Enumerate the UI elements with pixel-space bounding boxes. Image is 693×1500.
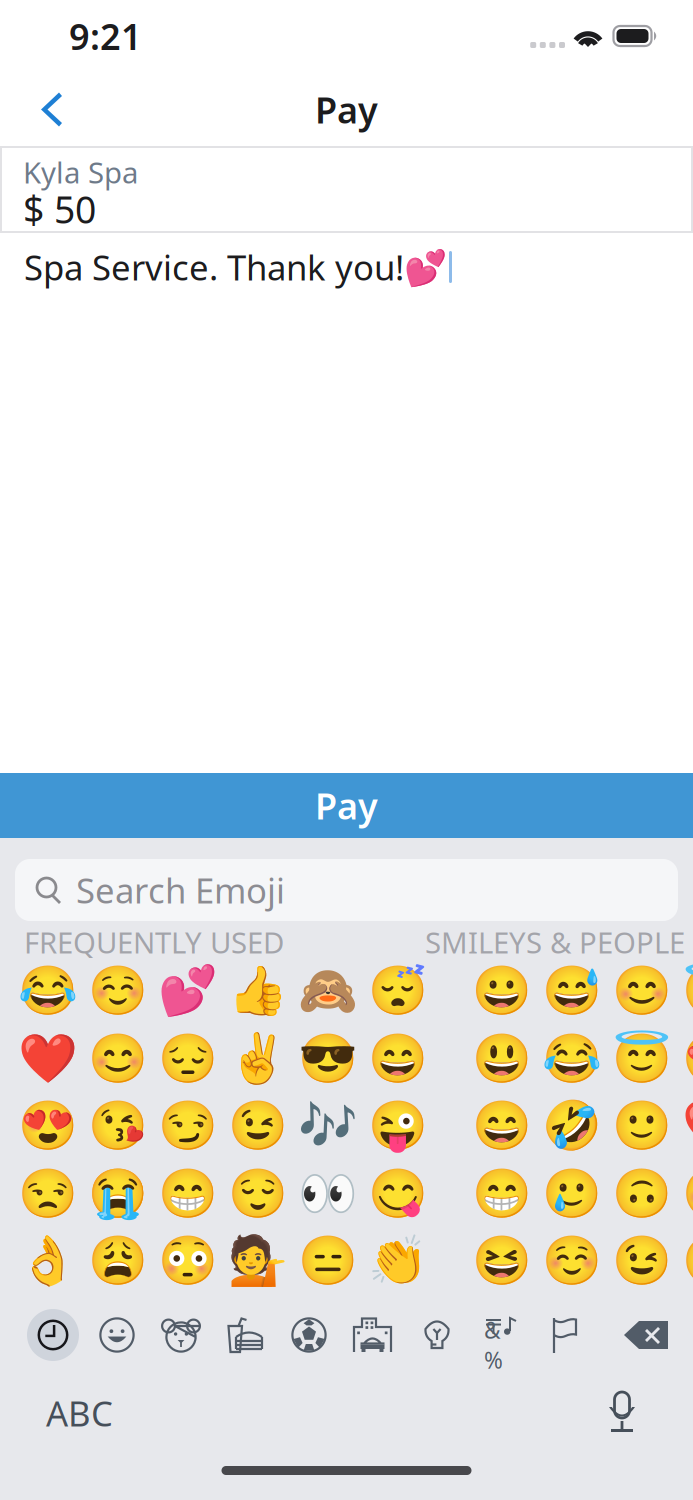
button[interactable]: 😉	[223, 1092, 293, 1159]
button[interactable]: 😉	[607, 1227, 677, 1294]
staticText: 😄	[472, 1099, 532, 1153]
button[interactable]: Search Emoji	[15, 859, 678, 921]
button[interactable]: Dictate	[587, 1391, 657, 1435]
button[interactable]: 😄	[467, 1092, 537, 1159]
button[interactable]: 👏	[363, 1227, 433, 1294]
button[interactable]: 😋	[363, 1160, 433, 1227]
staticText: 🙈	[298, 964, 358, 1018]
button[interactable]: 😊	[677, 1160, 693, 1227]
staticText: Pay	[315, 782, 378, 829]
staticText: 💁	[228, 1234, 288, 1288]
button[interactable]: 🥲	[537, 1160, 607, 1227]
staticText: 👌	[18, 1234, 78, 1288]
button[interactable]: Flags	[533, 1303, 597, 1367]
staticText: ✌️	[228, 1031, 288, 1086]
button[interactable]: 😁	[153, 1160, 223, 1227]
staticText: 🎶	[298, 1099, 358, 1153]
button[interactable]: 😂	[537, 1025, 607, 1092]
button[interactable]: 😘	[677, 1227, 693, 1294]
button[interactable]: Objects	[405, 1303, 469, 1367]
button[interactable]: Recently used	[21, 1303, 85, 1367]
staticText: Search Emoji	[76, 867, 285, 913]
button[interactable]: 😊	[83, 1025, 153, 1092]
staticText: 😊	[612, 964, 672, 1018]
button[interactable]: 👍	[223, 957, 293, 1024]
button[interactable]: ❤️	[677, 1092, 693, 1159]
button[interactable]: ☺️	[537, 1227, 607, 1294]
button[interactable]: 👀	[293, 1160, 363, 1227]
button[interactable]: Symbols	[469, 1303, 533, 1367]
staticText: 😒	[18, 1166, 78, 1221]
button[interactable]: Travel and places	[341, 1303, 405, 1367]
button[interactable]: 😍	[677, 1025, 693, 1092]
staticText: 😜	[368, 1099, 428, 1153]
button[interactable]: 😆	[467, 1227, 537, 1294]
button[interactable]: 💁	[223, 1227, 293, 1294]
button[interactable]: 🤣	[537, 1092, 607, 1159]
button[interactable]: ✌️	[223, 1025, 293, 1092]
staticText: 😁	[158, 1166, 218, 1221]
staticText: 😂	[18, 964, 78, 1018]
staticText: 😘	[682, 1234, 693, 1288]
staticText: 👏	[368, 1234, 428, 1288]
staticText: 🙂	[612, 1099, 672, 1153]
button[interactable]: 😭	[83, 1160, 153, 1227]
button[interactable]: ☺️	[83, 957, 153, 1024]
button[interactable]: 😅	[537, 957, 607, 1024]
button[interactable]: Activity	[277, 1303, 341, 1367]
button[interactable]: 😔	[153, 1025, 223, 1092]
button[interactable]: Animals and nature	[149, 1303, 213, 1367]
staticText: 😴	[368, 964, 428, 1018]
button[interactable]: 🙈	[293, 957, 363, 1024]
button[interactable]: 😂	[13, 957, 83, 1024]
staticText: 😁	[472, 1166, 532, 1221]
staticText: 👍	[228, 964, 288, 1018]
button[interactable]: 😊	[607, 957, 677, 1024]
button[interactable]: 😑	[293, 1227, 363, 1294]
button[interactable]: 😁	[467, 1160, 537, 1227]
button[interactable]: 😜	[363, 1092, 433, 1159]
staticText: 😇	[612, 1031, 672, 1086]
button[interactable]: 🙂	[607, 1092, 677, 1159]
staticText: 😉	[228, 1099, 288, 1153]
button[interactable]: 😀	[467, 957, 537, 1024]
button[interactable]: ABC	[30, 1376, 129, 1450]
button[interactable]: 🙃	[607, 1160, 677, 1227]
staticText: 😍	[682, 1031, 693, 1086]
staticText: 😂	[542, 1031, 602, 1086]
staticText: 🤣	[542, 1099, 602, 1153]
button[interactable]: 😇	[677, 957, 693, 1024]
button[interactable]: 😴	[363, 957, 433, 1024]
staticText: 😀	[472, 964, 532, 1018]
button[interactable]: 😩	[83, 1227, 153, 1294]
button[interactable]: Back	[0, 77, 84, 141]
button[interactable]: 😄	[363, 1025, 433, 1092]
staticText: ☺️	[88, 964, 148, 1018]
staticText: 😏	[158, 1099, 218, 1153]
staticText: 😳	[158, 1234, 218, 1288]
button[interactable]: 😍	[13, 1092, 83, 1159]
button[interactable]: 😇	[607, 1025, 677, 1092]
staticText: 😆	[472, 1234, 532, 1288]
staticText: SMILEYS & PEOPLE	[425, 922, 685, 961]
staticText: 😑	[298, 1234, 358, 1288]
button[interactable]: 👌	[13, 1227, 83, 1294]
button[interactable]: 😌	[223, 1160, 293, 1227]
button[interactable]: 🎶	[293, 1092, 363, 1159]
button[interactable]: ❤️	[13, 1025, 83, 1092]
staticText: 😘	[88, 1099, 148, 1153]
staticText: ❤️	[682, 1099, 693, 1153]
button[interactable]: 😳	[153, 1227, 223, 1294]
button[interactable]: 😃	[467, 1025, 537, 1092]
staticText: Kyla Spa	[23, 152, 138, 191]
button[interactable]: Food and drink	[213, 1303, 277, 1367]
button[interactable]: Smileys and people	[85, 1303, 149, 1367]
button[interactable]: 😏	[153, 1092, 223, 1159]
button[interactable]: 😎	[293, 1025, 363, 1092]
button[interactable]: Delete	[611, 1303, 683, 1367]
staticText: 😭	[88, 1166, 148, 1221]
button[interactable]: Pay	[0, 773, 693, 838]
button[interactable]: 💕	[153, 957, 223, 1024]
button[interactable]: 😘	[83, 1092, 153, 1159]
button[interactable]: 😒	[13, 1160, 83, 1227]
